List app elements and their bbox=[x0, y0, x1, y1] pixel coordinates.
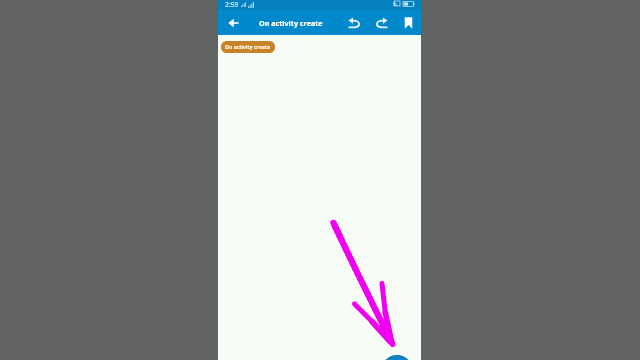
button[interactable]: Bookmark bbox=[398, 12, 418, 33]
button[interactable]: Back bbox=[222, 12, 244, 34]
button[interactable]: Undo bbox=[343, 12, 364, 33]
staticText: 2:59 bbox=[225, 0, 239, 9]
button[interactable]: On activity create bbox=[221, 41, 275, 53]
button[interactable]: Add bbox=[381, 355, 413, 360]
staticText: On activity create bbox=[225, 44, 271, 51]
staticText: On activity create bbox=[259, 18, 323, 28]
button[interactable]: Redo bbox=[371, 12, 392, 33]
